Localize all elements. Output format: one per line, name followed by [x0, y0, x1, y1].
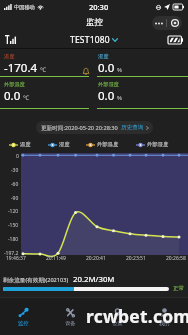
staticText: 0: [16, 153, 19, 160]
button[interactable]: 外部温度: [86, 141, 119, 148]
staticText: 监控: [18, 320, 29, 327]
staticText: 湿度: [98, 53, 109, 60]
button[interactable]: More options: [152, 16, 166, 30]
staticText: ℃: [40, 66, 46, 74]
staticText: 中国移动: [14, 4, 35, 11]
staticText: 设备: [65, 320, 76, 327]
staticText: 历史查询: [121, 124, 144, 131]
staticText: 外部湿度: [98, 81, 119, 88]
staticText: 0.0: [98, 60, 115, 76]
staticText: 0.0: [98, 88, 115, 104]
staticText: 20.2M/30M: [73, 274, 115, 285]
button[interactable]: Close: [167, 16, 182, 30]
staticText: 位置: [112, 320, 123, 327]
button[interactable]: 更新时间:2020-05-20 20:28:30: [41, 121, 149, 134]
staticText: 20:11:49: [46, 255, 66, 262]
staticText: 20:30: [89, 2, 109, 12]
button[interactable]: 湿度: [48, 141, 70, 148]
button[interactable]: 监控: [0, 298, 47, 335]
staticText: -90: [11, 195, 19, 202]
staticText: -120: [8, 208, 19, 215]
staticText: 温度: [4, 53, 15, 60]
button[interactable]: 位置: [94, 298, 141, 335]
staticText: -60: [11, 181, 19, 188]
staticText: TEST1080: [70, 34, 110, 46]
staticText: -197.2: [4, 250, 19, 257]
staticText: -30: [11, 167, 19, 174]
staticText: 正常: [173, 285, 185, 292]
button[interactable]: TEST1080: [70, 34, 118, 46]
staticText: 温度: [20, 141, 31, 148]
button[interactable]: 温度: [9, 141, 31, 148]
staticText: 20:26:58: [166, 255, 186, 262]
staticText: 外部温度: [97, 141, 119, 148]
staticText: -170.4: [4, 60, 38, 76]
staticText: rcwbet.com: [86, 304, 188, 328]
staticText: -180: [8, 236, 19, 243]
staticText: 监控: [86, 17, 103, 28]
staticText: 更新时间:2020-05-20 20:28:30: [41, 124, 118, 132]
staticText: 0.0: [4, 88, 21, 104]
staticText: 19:46:37: [6, 255, 26, 262]
staticText: 外部温度: [4, 81, 25, 88]
staticText: 剩余流量(有效期)(202103): [3, 276, 69, 284]
staticText: ℃: [23, 94, 29, 102]
staticText: 外部湿度: [147, 141, 169, 148]
staticText: -150: [8, 222, 19, 229]
staticText: 20:23:51: [126, 255, 146, 262]
staticText: 湿度: [59, 141, 70, 148]
staticText: 我的: [159, 320, 170, 327]
button[interactable]: 外部湿度: [136, 141, 169, 148]
staticText: 20:20:41: [86, 255, 106, 262]
button[interactable]: 设备: [47, 298, 94, 335]
staticText: %: [117, 66, 122, 74]
button[interactable]: 我的: [141, 298, 188, 335]
staticText: %: [117, 94, 122, 102]
